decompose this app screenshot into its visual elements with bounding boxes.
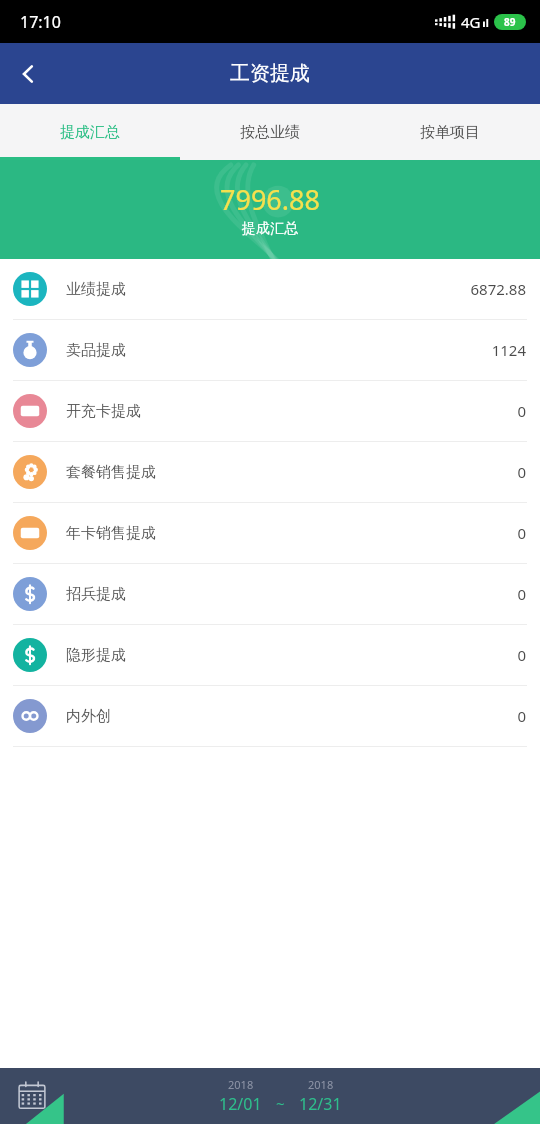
button[interactable]: 招兵提成 [0, 564, 540, 624]
staticText: 开充卡提成 [66, 402, 141, 421]
button[interactable]: 按总业绩 [180, 104, 360, 160]
staticText: 1124 [491, 340, 526, 360]
button[interactable]: Pick date [8, 1072, 56, 1120]
button[interactable]: 业绩提成 [0, 259, 540, 319]
staticText: 0 [517, 706, 526, 726]
staticText: 0 [517, 401, 526, 421]
button[interactable]: 卖品提成 [0, 320, 540, 380]
staticText: 0 [517, 584, 526, 604]
staticText: 12/31 [299, 1093, 342, 1115]
button[interactable]: 提成汇总 [0, 104, 180, 160]
staticText: 0 [517, 645, 526, 665]
staticText: ~ [276, 1093, 285, 1113]
button[interactable]: 2018 [219, 1077, 262, 1115]
staticText: 0 [517, 523, 526, 543]
staticText: 年卡销售提成 [66, 524, 156, 543]
staticText: 0 [517, 462, 526, 482]
button[interactable]: 内外创 [0, 686, 540, 746]
button[interactable]: Back [0, 46, 56, 102]
staticText: 12/01 [219, 1093, 262, 1115]
staticText: 招兵提成 [66, 585, 126, 604]
staticText: 4G [461, 12, 481, 32]
staticText: 89 [504, 15, 516, 29]
button[interactable]: 开充卡提成 [0, 381, 540, 441]
button[interactable]: 2018 [299, 1077, 342, 1115]
staticText: 提成汇总 [60, 123, 120, 142]
staticText: 17:10 [20, 11, 61, 33]
button[interactable]: 隐形提成 [0, 625, 540, 685]
staticText: 2018 [228, 1077, 254, 1092]
staticText: 业绩提成 [66, 280, 126, 299]
staticText: 6872.88 [470, 279, 526, 299]
staticText: 按总业绩 [240, 123, 300, 142]
staticText: 隐形提成 [66, 646, 126, 665]
staticText: 2018 [308, 1077, 334, 1092]
staticText: 内外创 [66, 707, 111, 726]
button[interactable]: 年卡销售提成 [0, 503, 540, 563]
staticText: 卖品提成 [66, 341, 126, 360]
staticText: 工资提成 [230, 61, 310, 86]
staticText: 套餐销售提成 [66, 463, 156, 482]
button[interactable]: 套餐销售提成 [0, 442, 540, 502]
staticText: 7996.88 [220, 181, 320, 218]
button[interactable]: 按单项目 [360, 104, 540, 160]
staticText: 按单项目 [420, 123, 480, 142]
staticText: 提成汇总 [242, 220, 298, 238]
